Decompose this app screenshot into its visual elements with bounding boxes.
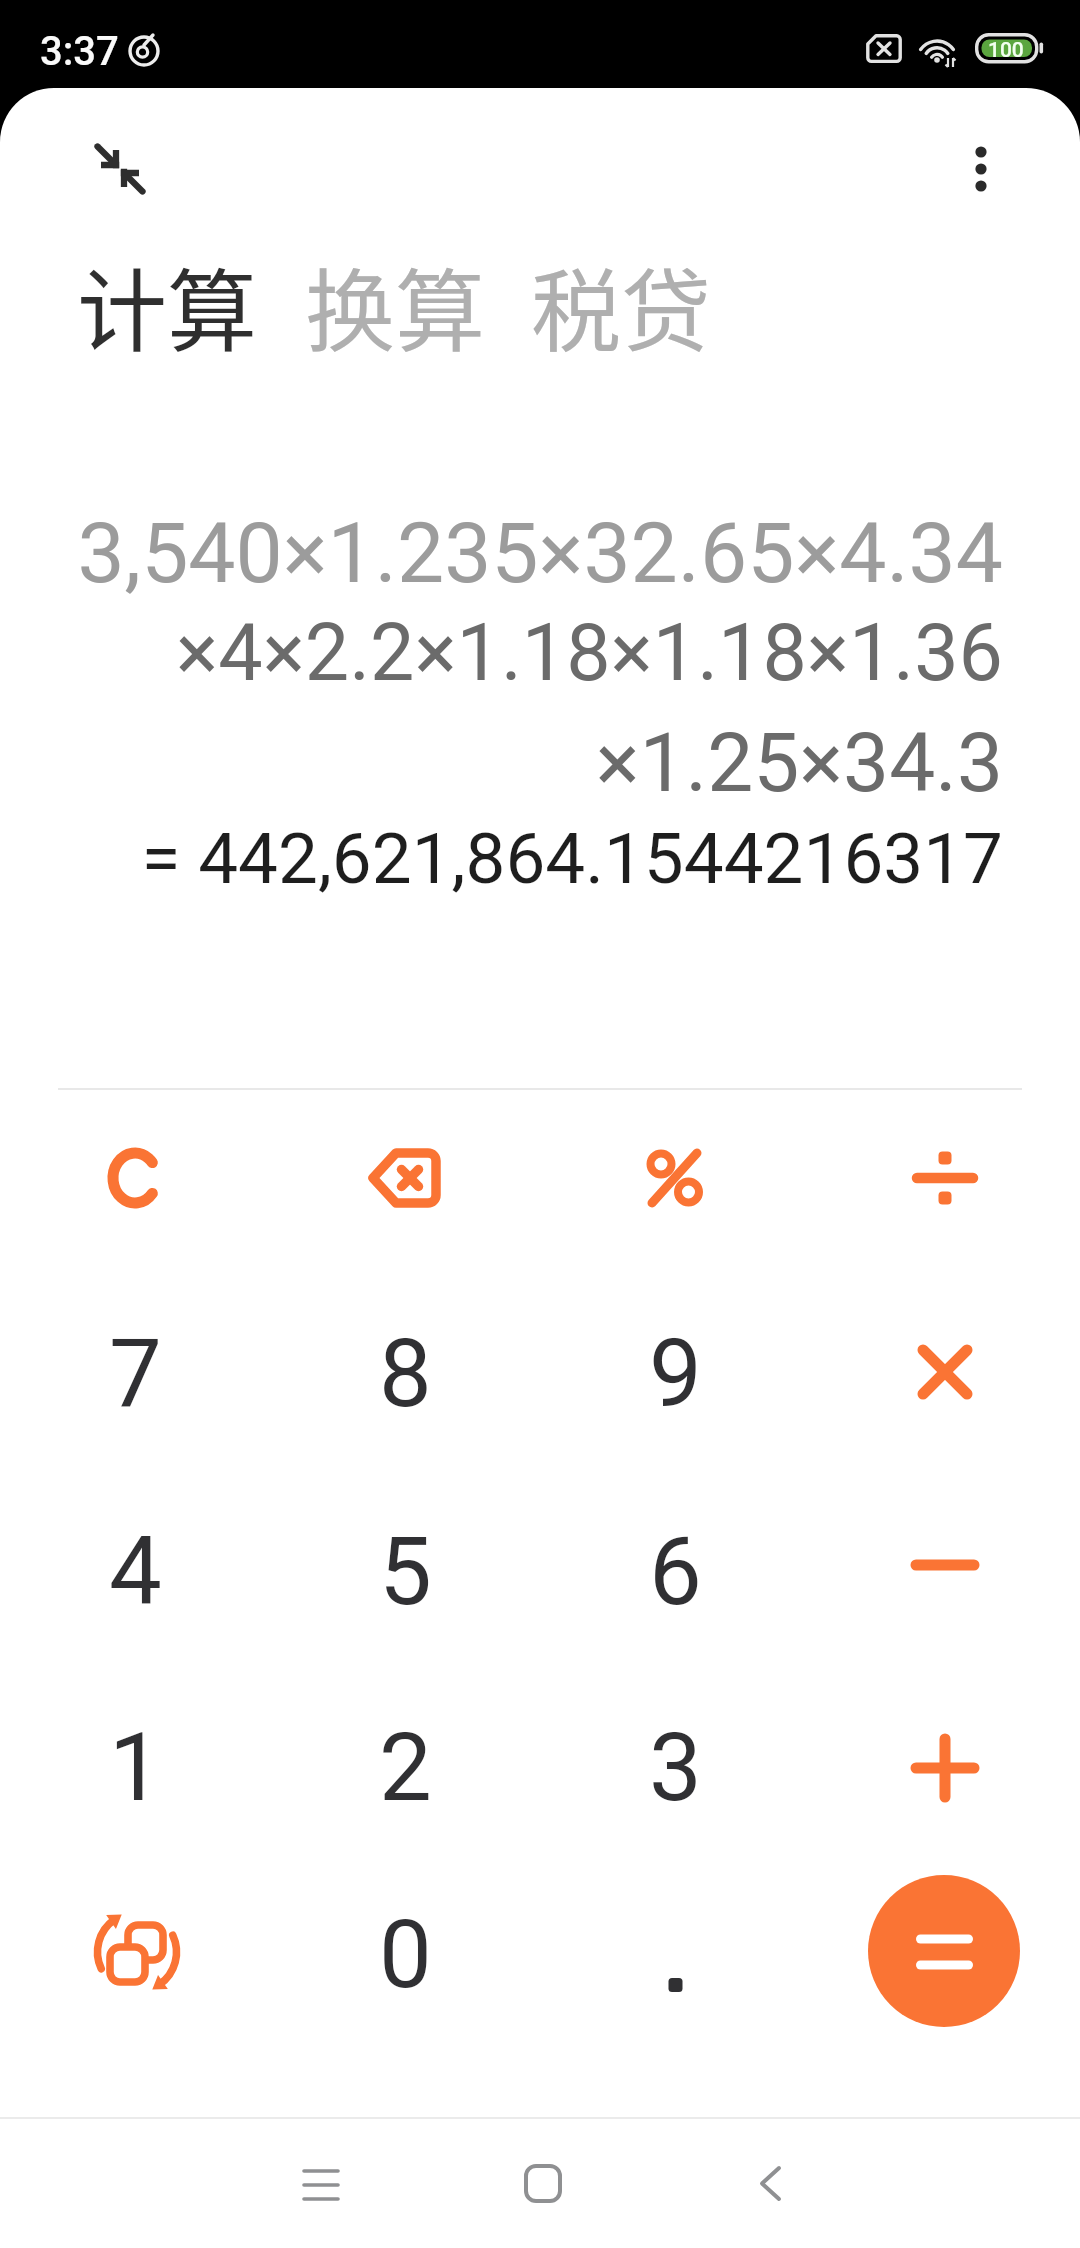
staticText: 3,540×1.235×32.65×4.34: [77, 504, 1003, 602]
button[interactable]: [946, 124, 1016, 194]
button[interactable]: 9: [580, 1279, 770, 1469]
button[interactable]: [850, 1470, 1040, 1660]
button[interactable]: [40, 1083, 230, 1273]
staticText: ×4×2.2×1.18×1.18×1.36: [176, 607, 1003, 700]
button[interactable]: 2: [310, 1673, 500, 1863]
button[interactable]: [271, 2135, 371, 2235]
button[interactable]: [76, 124, 162, 210]
button[interactable]: 7: [40, 1279, 230, 1469]
button[interactable]: 8: [310, 1279, 500, 1469]
button[interactable]: 5: [310, 1477, 500, 1667]
button[interactable]: 税贷: [531, 240, 711, 370]
button[interactable]: [850, 1277, 1040, 1467]
button[interactable]: 1: [40, 1673, 230, 1863]
staticText: 4: [109, 1517, 162, 1627]
button[interactable]: [850, 1083, 1040, 1273]
staticText: 0: [379, 1900, 432, 2010]
staticText: 8: [379, 1319, 432, 1429]
button[interactable]: [580, 1083, 770, 1273]
staticText: = 442,621,864.1544216317: [141, 817, 1003, 900]
staticText: 3: [649, 1713, 702, 1823]
button[interactable]: [310, 1083, 500, 1273]
staticText: ×1.25×34.3: [595, 715, 1003, 811]
button[interactable]: 0: [310, 1860, 500, 2050]
button[interactable]: 计算: [77, 240, 257, 370]
button[interactable]: 6: [580, 1477, 770, 1667]
staticText: 9: [649, 1319, 702, 1429]
button[interactable]: [850, 1673, 1040, 1863]
button[interactable]: [493, 2135, 593, 2235]
staticText: 2: [379, 1713, 432, 1823]
staticText: 6: [649, 1517, 702, 1627]
staticText: 100: [988, 38, 1024, 63]
button[interactable]: [868, 1875, 1020, 2027]
staticText: 1: [109, 1713, 162, 1823]
button[interactable]: 4: [40, 1477, 230, 1667]
staticText: 7: [109, 1319, 162, 1429]
staticText: 3:37: [40, 28, 119, 75]
button[interactable]: 换算: [305, 240, 485, 370]
staticText: 5: [379, 1517, 432, 1627]
button[interactable]: [580, 1860, 770, 2050]
button[interactable]: [720, 2135, 820, 2235]
button[interactable]: 3: [580, 1673, 770, 1863]
button[interactable]: [42, 1857, 232, 2047]
